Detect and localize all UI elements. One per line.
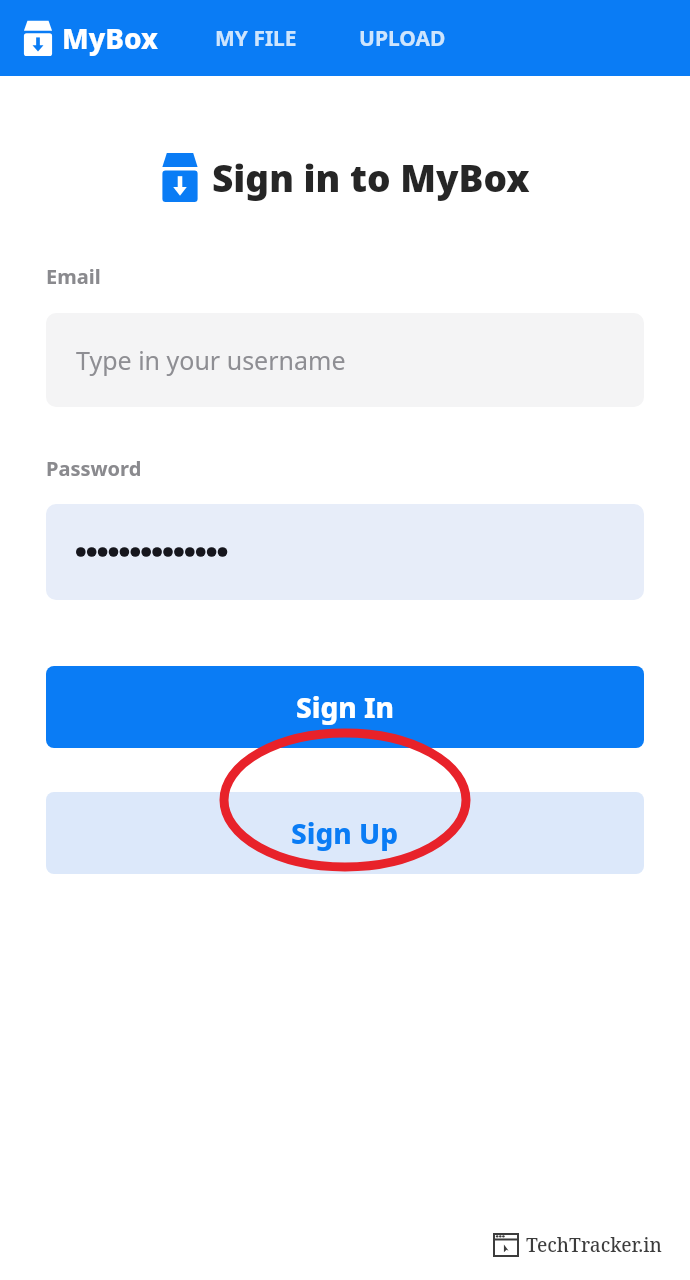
staticText: Email <box>46 263 101 290</box>
button[interactable]: MyBox <box>20 15 160 61</box>
staticText: Sign Up <box>291 814 399 852</box>
button[interactable]: Type in your username <box>46 313 644 407</box>
staticText: Type in your username <box>76 343 346 377</box>
staticText: TechTracker.in <box>526 1232 662 1258</box>
staticText: MY FILE <box>215 24 297 53</box>
staticText: Sign in to MyBox <box>212 152 530 202</box>
button[interactable] <box>46 504 644 600</box>
button[interactable]: MY FILE <box>209 14 303 63</box>
staticText: MyBox <box>62 19 158 57</box>
button[interactable]: Sign In <box>46 666 644 748</box>
staticText: Password <box>46 455 142 482</box>
button[interactable]: UPLOAD <box>353 14 452 63</box>
staticText: UPLOAD <box>359 24 446 53</box>
button[interactable]: Sign Up <box>46 792 644 874</box>
staticText: Sign In <box>296 688 395 726</box>
